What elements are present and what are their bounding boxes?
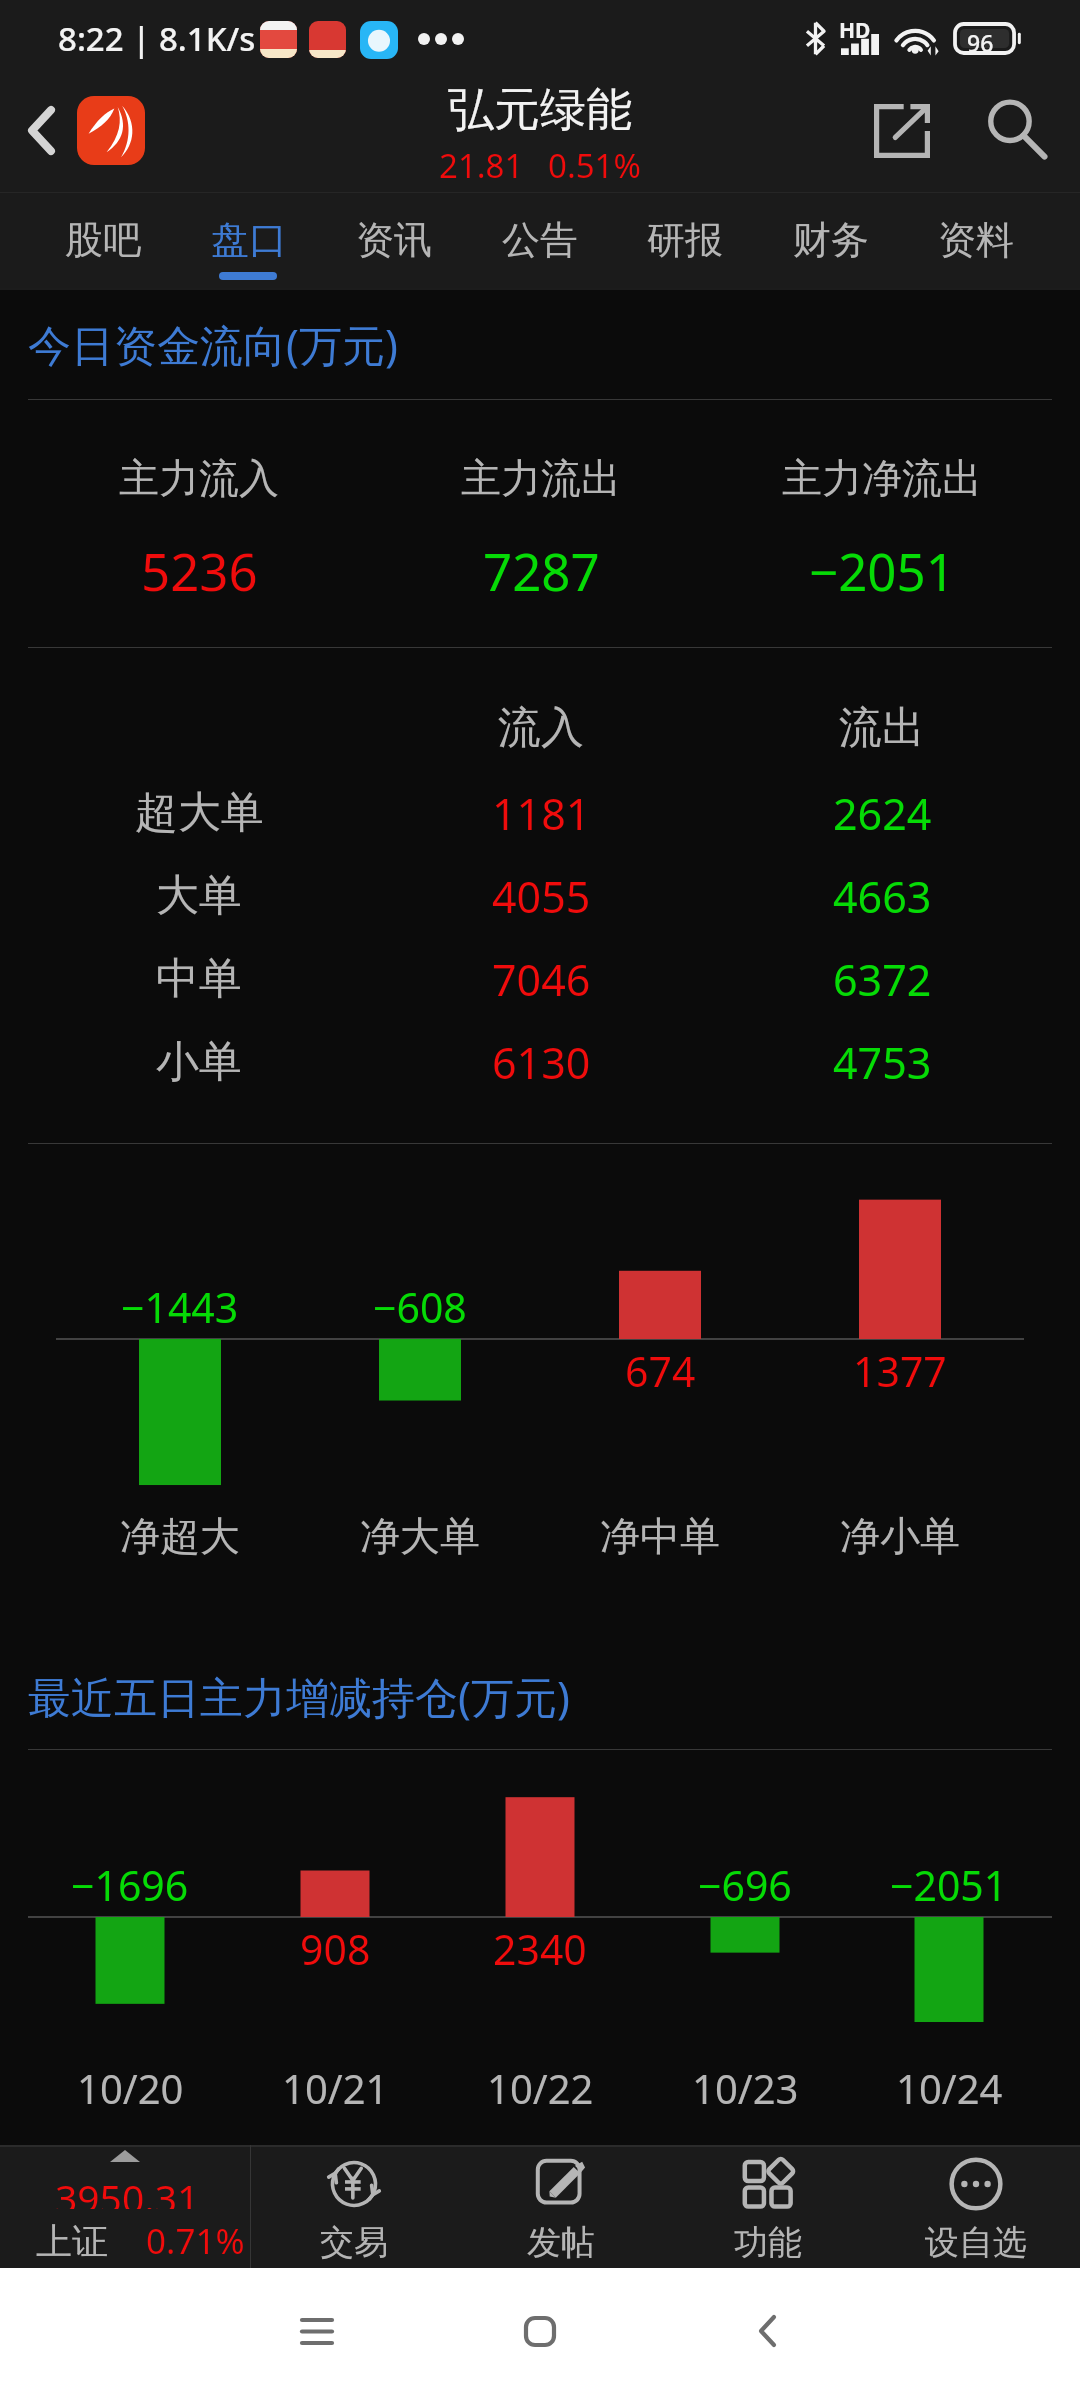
staticText: 中单 (156, 952, 242, 1006)
staticText: 96 (967, 27, 994, 58)
button[interactable]: 资料 (904, 192, 1048, 288)
staticText: 流出 (839, 701, 925, 755)
staticText: 7046 (492, 950, 591, 1009)
staticText: 主力流出 (461, 453, 621, 503)
staticText: 今日资金流向(万元) (28, 315, 398, 374)
staticText: 1377 (853, 1343, 947, 1399)
staticText: 设自选 (925, 2221, 1027, 2263)
staticText: 10/24 (896, 2061, 1003, 2115)
staticText: 10/20 (77, 2061, 184, 2115)
staticText: 净大单 (360, 1511, 480, 1561)
staticText: −608 (373, 1279, 467, 1335)
staticText: 交易 (320, 2221, 388, 2263)
button[interactable]: 设自选 (872, 2145, 1080, 2268)
staticText: −696 (698, 1857, 792, 1913)
staticText: 4753 (833, 1033, 932, 1092)
staticText: 0.51% (548, 143, 641, 188)
button[interactable]: 研报 (613, 192, 757, 288)
staticText: 研报 (647, 216, 723, 264)
button[interactable]: 发帖 (457, 2145, 665, 2268)
staticText: 2624 (833, 784, 932, 843)
staticText: 弘元绿能 (448, 81, 632, 139)
staticText: 公告 (502, 216, 578, 264)
staticText: 资讯 (356, 216, 432, 264)
staticText: 5236 (141, 536, 258, 605)
button[interactable]: Search (971, 84, 1063, 174)
staticText: 21.81 (439, 143, 524, 188)
button[interactable]: 股吧 (31, 192, 175, 288)
staticText: 6372 (833, 950, 932, 1009)
staticText: 资料 (938, 216, 1014, 264)
button[interactable]: 交易 (250, 2145, 458, 2268)
staticText: 主力净流出 (782, 453, 982, 503)
staticText: 净中单 (600, 1511, 720, 1561)
staticText: 财务 (793, 216, 869, 264)
button[interactable] (28, 1021, 1052, 1103)
staticText: 2340 (493, 1921, 587, 1977)
staticText: 4055 (492, 867, 591, 926)
staticText: 6130 (492, 1033, 591, 1092)
staticText: 股吧 (65, 216, 141, 264)
button[interactable]: Back (0, 80, 80, 192)
button[interactable]: 今日资金流向(万元) (28, 300, 398, 388)
staticText: 超大单 (135, 786, 264, 840)
staticText: 7287 (483, 536, 600, 605)
staticText: HD (839, 16, 871, 45)
button[interactable]: 最近五日主力增减持仓(万元) (28, 1652, 570, 1740)
button[interactable] (28, 938, 1052, 1020)
staticText: 小单 (156, 1035, 242, 1089)
button[interactable]: 功能 (664, 2145, 872, 2268)
staticText: 发帖 (527, 2221, 595, 2263)
staticText: −1696 (71, 1857, 189, 1913)
button[interactable]: App home (77, 96, 145, 165)
button[interactable]: Share (859, 86, 945, 176)
staticText: 908 (300, 1921, 371, 1977)
staticText: 盘口 (211, 216, 287, 264)
staticText: 10/23 (692, 2061, 799, 2115)
staticText: 净超大 (120, 1511, 240, 1561)
staticText: 大单 (156, 869, 242, 923)
button[interactable]: Recents (269, 2283, 365, 2379)
staticText: 流入 (498, 701, 584, 755)
button[interactable] (28, 855, 1052, 937)
button[interactable] (28, 772, 1052, 854)
button[interactable]: Home (492, 2283, 588, 2379)
staticText: 4663 (833, 867, 932, 926)
button[interactable]: 公告 (468, 192, 612, 288)
staticText: 最近五日主力增减持仓(万元) (28, 1667, 570, 1726)
staticText: 功能 (734, 2221, 802, 2263)
staticText: −2051 (809, 536, 955, 605)
staticText: 0.71% (146, 2217, 245, 2261)
staticText: 1181 (492, 784, 591, 843)
staticText: 10/22 (487, 2061, 594, 2115)
staticText: 主力流入 (119, 453, 279, 503)
button[interactable]: 盘口 (177, 192, 321, 288)
button[interactable]: 财务 (759, 192, 903, 288)
staticText: −2051 (890, 1857, 1008, 1913)
button[interactable]: 3950.31 (0, 2145, 250, 2268)
staticText: 8:22 | 8.1K/s (58, 16, 256, 61)
button[interactable]: 资讯 (322, 192, 466, 288)
staticText: 3950.31 (55, 2171, 200, 2209)
button[interactable]: Back (719, 2283, 815, 2379)
staticText: 10/21 (282, 2061, 389, 2115)
staticText: −1443 (121, 1279, 239, 1335)
staticText: 674 (625, 1343, 696, 1399)
staticText: 上证 (36, 2219, 108, 2259)
staticText: 净小单 (840, 1511, 960, 1561)
